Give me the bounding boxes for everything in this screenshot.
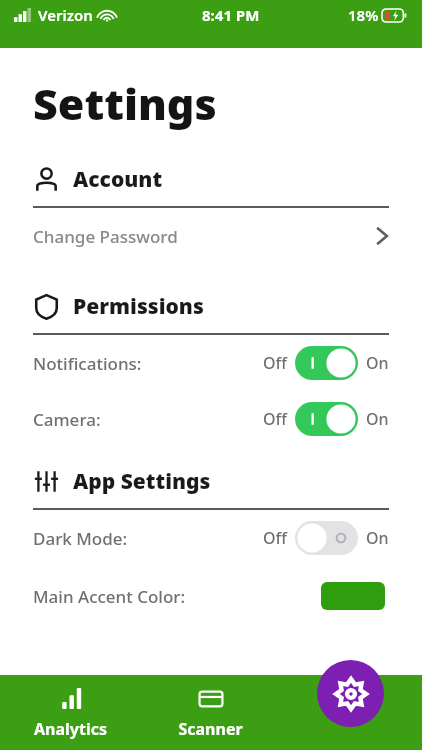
staticText: Camera: — [33, 408, 101, 431]
staticText: On — [366, 408, 389, 430]
button[interactable]: Toggle on — [295, 346, 358, 380]
staticText: On — [366, 527, 389, 549]
staticText: Account — [73, 165, 163, 194]
staticText: Main Accent Color: — [33, 585, 186, 608]
button[interactable]: Notifications: — [0, 335, 422, 391]
staticText: 18% — [348, 5, 379, 25]
staticText: Scanner — [178, 718, 243, 740]
staticText: Settings — [33, 74, 217, 133]
staticText: Notifications: — [33, 352, 142, 375]
staticText: Permissions — [73, 292, 204, 321]
staticText: Analytics — [34, 718, 107, 740]
button[interactable]: Toggle off — [295, 521, 358, 555]
button[interactable]: Settings — [317, 660, 384, 727]
button[interactable]: Scanner — [140, 680, 281, 746]
button[interactable]: Dark Mode: — [0, 510, 422, 566]
button[interactable]: Analytics — [0, 680, 140, 746]
staticText: Dark Mode: — [33, 527, 128, 550]
staticText: Change Password — [33, 225, 178, 248]
staticText: Off — [263, 527, 287, 549]
button[interactable]: Main Accent Color: — [0, 566, 422, 626]
staticText: On — [366, 352, 389, 374]
staticText: App Settings — [73, 467, 211, 496]
button[interactable]: Change Password — [0, 208, 422, 264]
staticText: Off — [263, 352, 287, 374]
staticText: 8:41 PM — [202, 5, 260, 25]
button[interactable]: Toggle on — [295, 402, 358, 436]
staticText: Verizon — [38, 5, 93, 25]
button[interactable]: Camera: — [0, 391, 422, 447]
staticText: Off — [263, 408, 287, 430]
